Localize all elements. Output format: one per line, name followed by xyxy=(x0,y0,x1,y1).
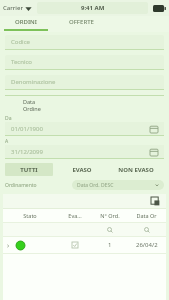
staticText: Da xyxy=(5,115,12,122)
button[interactable]: OFFERTE xyxy=(52,16,110,32)
staticText: N° Ord. xyxy=(100,212,120,219)
button[interactable]: Eva... xyxy=(57,209,92,222)
staticText: Stato xyxy=(23,212,37,219)
button[interactable]: NON EVASO xyxy=(107,163,164,176)
staticText: A xyxy=(5,138,9,145)
staticText: Denominazione xyxy=(11,78,56,86)
button[interactable]: Data Ord. DESC xyxy=(72,180,164,190)
button[interactable]: TUTTI xyxy=(5,163,53,176)
staticText: OFFERTE xyxy=(69,18,94,26)
staticText: Data Or xyxy=(136,212,157,219)
button[interactable]: Data Or xyxy=(127,209,166,222)
button[interactable]: Denominazione xyxy=(5,75,164,90)
staticText: Data Ord. DESC xyxy=(77,182,114,189)
staticText: EVASO xyxy=(72,166,92,174)
other: Pick date xyxy=(150,148,158,156)
button[interactable]: Search column xyxy=(127,223,166,236)
staticText: Ordinamento xyxy=(5,182,37,189)
staticText: Ordine xyxy=(23,105,41,112)
button[interactable]: 01/01/1900 xyxy=(5,122,164,135)
staticText: 1 xyxy=(108,241,112,249)
staticText: Codice xyxy=(11,38,30,46)
staticText: 26/04/2 xyxy=(136,241,158,249)
button[interactable]: Stato xyxy=(3,209,57,222)
staticText: 9:41 AM xyxy=(81,4,105,12)
staticText: NON EVASO xyxy=(118,166,154,174)
button[interactable]: Address bar xyxy=(37,2,148,14)
button[interactable]: N° Ord. xyxy=(92,209,127,222)
other: Pick date xyxy=(150,125,158,133)
button[interactable]: EVASO xyxy=(61,163,103,176)
button[interactable]: Codice xyxy=(5,35,164,50)
button[interactable]: Tecnico xyxy=(5,55,164,70)
button[interactable]: Export xyxy=(151,197,160,206)
staticText: TUTTI xyxy=(20,166,38,174)
button[interactable]: ORDINI xyxy=(0,16,52,32)
staticText: Data xyxy=(23,98,36,105)
staticText: 31/12/2099 xyxy=(11,148,43,156)
staticText: ORDINI xyxy=(15,18,37,26)
button[interactable]: 31/12/2099 xyxy=(5,145,164,158)
staticText: Tecnico xyxy=(11,58,32,66)
button[interactable]: Search column xyxy=(92,223,127,236)
staticText: Carrier xyxy=(3,4,23,12)
staticText: 01/01/1900 xyxy=(11,125,43,133)
button[interactable]: 1 xyxy=(3,237,166,253)
staticText: Eva... xyxy=(68,212,82,219)
